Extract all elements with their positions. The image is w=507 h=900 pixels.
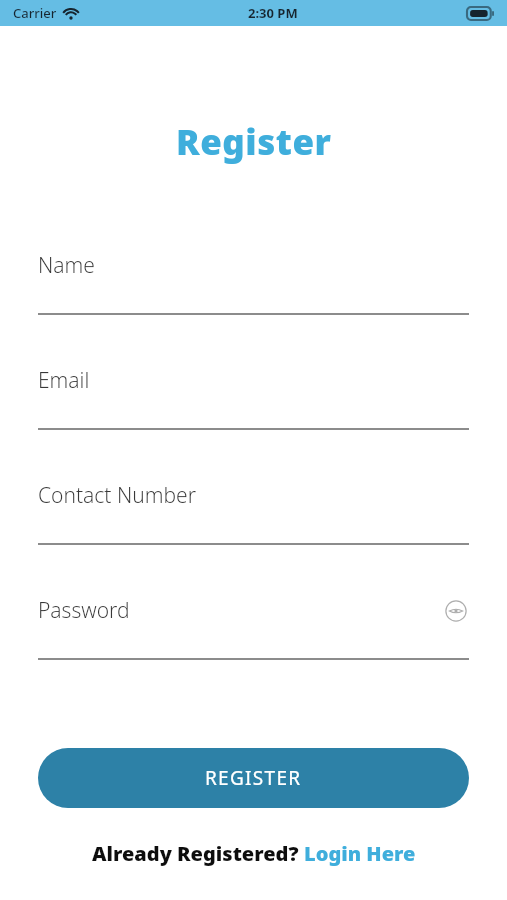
staticText: Register [176,118,332,166]
button[interactable]: Email [0,338,507,453]
button[interactable]: Show password [443,598,469,624]
staticText: Contact Number [38,481,196,510]
staticText: Name [38,251,95,280]
staticText: Email [38,366,90,395]
button[interactable]: REGISTER [38,748,469,808]
staticText: Login Here [304,840,416,867]
staticText: Password [38,596,130,625]
staticText: REGISTER [205,765,302,791]
button[interactable]: Name [0,223,507,338]
button[interactable]: Already Registered? [0,840,507,867]
button[interactable]: Contact Number [0,453,507,568]
button[interactable]: Password [0,568,507,683]
staticText: 2:30 PM [248,4,298,22]
staticText: Carrier [13,4,57,22]
staticText: Already Registered? [92,840,304,867]
